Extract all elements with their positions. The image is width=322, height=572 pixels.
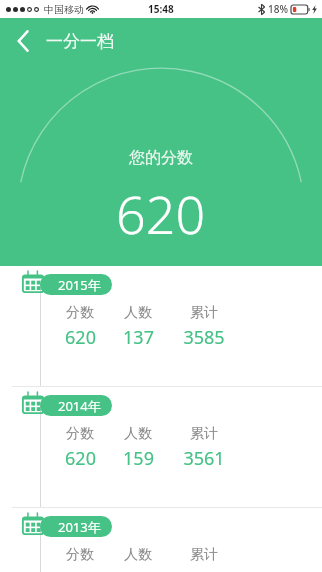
- staticText: 分数: [66, 304, 94, 322]
- staticText: 人数: [124, 546, 152, 564]
- staticText: 3585: [183, 325, 225, 350]
- staticText: 人数: [124, 304, 152, 322]
- staticText: 137: [123, 325, 154, 350]
- staticText: 2015年: [58, 276, 101, 294]
- staticText: 人数: [124, 425, 152, 443]
- staticText: 620: [65, 325, 96, 350]
- staticText: 15:48: [148, 2, 174, 16]
- staticText: 620: [65, 446, 96, 471]
- staticText: 159: [123, 446, 154, 471]
- staticText: 累计: [190, 425, 218, 443]
- button[interactable]: 2015年: [0, 266, 322, 386]
- staticText: 一分一档: [46, 31, 114, 52]
- button[interactable]: 2013年: [0, 507, 322, 572]
- button[interactable]: Back: [0, 18, 46, 64]
- staticText: 3561: [183, 446, 225, 471]
- staticText: 累计: [190, 304, 218, 322]
- staticText: 分数: [66, 425, 94, 443]
- staticText: 2014年: [58, 397, 101, 415]
- staticText: 分数: [66, 546, 94, 564]
- staticText: 2013年: [58, 518, 101, 536]
- staticText: 18%: [268, 2, 288, 16]
- staticText: 累计: [190, 546, 218, 564]
- staticText: 中国移动: [44, 3, 84, 16]
- staticText: 您的分数: [129, 148, 193, 168]
- staticText: 620: [116, 178, 206, 249]
- button[interactable]: 2014年: [0, 386, 322, 507]
